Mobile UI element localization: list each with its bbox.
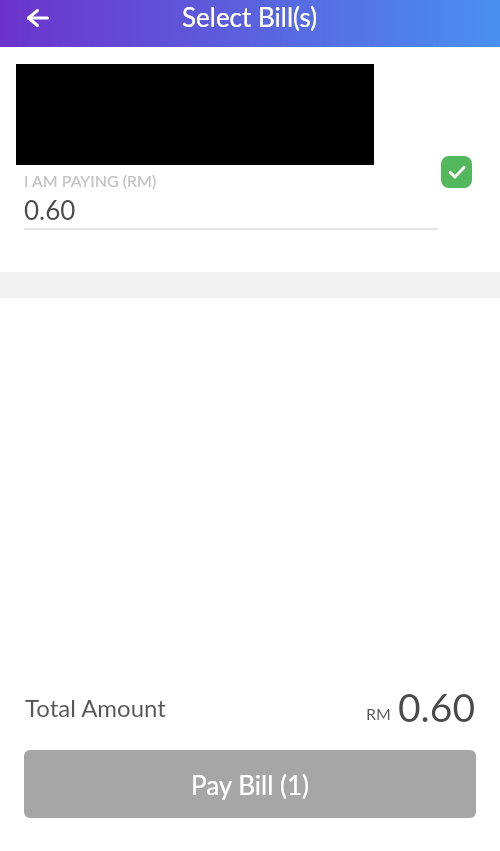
staticText: RM [366,704,391,723]
staticText: 0.60 [24,194,76,225]
button[interactable]: Total Amount [25,693,166,723]
staticText: Select Bill(s) [182,1,318,32]
button[interactable]: Pay Bill (1) [24,750,476,818]
button[interactable]: Back [16,0,60,40]
staticText: I AM PAYING (RM) [24,171,157,190]
staticText: 0.60 [398,684,476,731]
button[interactable]: Bill selected [441,156,472,188]
staticText: Total Amount [25,693,166,722]
staticText: Pay Bill (1) [191,769,309,800]
